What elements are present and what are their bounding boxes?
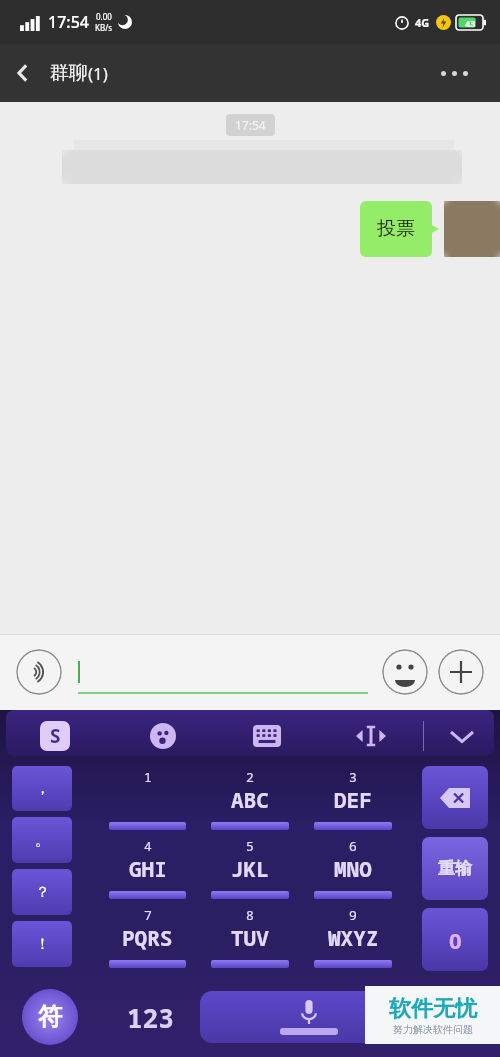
button[interactable]: 符 <box>0 977 100 1057</box>
staticText: ， <box>35 779 50 798</box>
button[interactable]: Emoji panel <box>110 710 215 762</box>
button[interactable]: Hide keyboard <box>424 710 500 762</box>
staticText: 8 <box>246 906 254 924</box>
staticText: ！ <box>35 935 50 954</box>
staticText: WXYZ <box>328 924 379 953</box>
staticText: DEF <box>334 786 372 815</box>
staticText: ？ <box>35 883 50 902</box>
staticText: 符 <box>38 1002 62 1032</box>
staticText: 群聊 <box>50 61 88 85</box>
staticText: 4 <box>144 837 152 855</box>
staticText: 中 <box>451 1002 475 1032</box>
button[interactable]: 0 <box>422 908 488 971</box>
button[interactable]: Voice input <box>16 649 62 695</box>
staticText: MNO <box>334 855 372 884</box>
staticText: JKL <box>231 855 269 884</box>
staticText: 4G <box>415 15 430 30</box>
button[interactable]: ？ <box>12 869 72 915</box>
button[interactable]: 123 <box>100 977 200 1057</box>
staticText: 123 <box>127 1000 174 1035</box>
button[interactable]: More options <box>426 53 482 93</box>
staticText: 重输 <box>438 858 472 879</box>
staticText: 9 <box>349 906 357 924</box>
button[interactable]: Sogou input <box>0 710 110 762</box>
staticText: 17:54 <box>48 11 89 33</box>
staticText: S <box>50 723 61 749</box>
staticText: KB/s <box>95 22 112 33</box>
button[interactable]: Back <box>0 50 46 96</box>
button[interactable]: 8 <box>202 902 297 971</box>
staticText: PQRS <box>122 924 173 953</box>
button[interactable]: 6 <box>305 833 400 902</box>
button[interactable]: 5 <box>202 833 297 902</box>
button[interactable]: 重输 <box>422 837 488 900</box>
staticText: 0 <box>449 925 462 955</box>
button[interactable]: Emoji <box>382 649 428 695</box>
button[interactable]: 投票 <box>360 201 432 257</box>
staticText: 3 <box>349 768 357 786</box>
staticText: 0.00 <box>96 11 112 22</box>
button[interactable]: 1 <box>100 764 194 833</box>
staticText: GHI <box>129 855 167 884</box>
button[interactable]: Move cursor <box>319 710 423 762</box>
button[interactable]: 9 <box>305 902 400 971</box>
button[interactable]: Keyboard layout <box>215 710 319 762</box>
staticText: 投票 <box>377 217 415 241</box>
button[interactable]: 7 <box>100 902 194 971</box>
staticText: 2 <box>246 768 254 786</box>
staticText: 5 <box>246 837 254 855</box>
staticText: 努力解决软件问题 <box>393 1023 473 1036</box>
staticText: 7 <box>144 906 152 924</box>
button[interactable]: 。 <box>12 817 72 863</box>
button[interactable]: ！ <box>12 921 72 967</box>
staticText: (1) <box>88 62 108 85</box>
staticText: 43 <box>465 17 476 29</box>
button[interactable]: Backspace <box>422 766 488 829</box>
button[interactable]: More functions <box>438 649 484 695</box>
staticText: 17:54 <box>235 117 266 133</box>
button[interactable]: 3 <box>305 764 400 833</box>
staticText: 6 <box>349 837 357 855</box>
staticText: ABC <box>231 786 269 815</box>
button[interactable]: 2 <box>202 764 297 833</box>
staticText: 1 <box>144 768 152 786</box>
button[interactable]: 4 <box>100 833 194 902</box>
staticText: 。 <box>35 831 50 850</box>
button[interactable]: Voice input <box>200 991 418 1043</box>
button[interactable]: 中 <box>426 977 500 1057</box>
staticText: TUV <box>231 924 269 953</box>
staticText: 软件无忧 <box>389 995 477 1023</box>
button[interactable]: ， <box>12 766 72 811</box>
button[interactable] <box>78 650 368 694</box>
